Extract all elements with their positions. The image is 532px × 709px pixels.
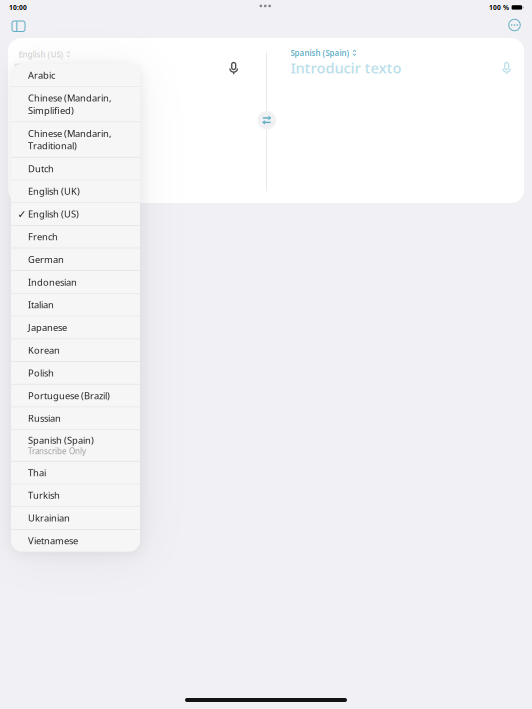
button[interactable]: Dutch [11, 157, 140, 180]
staticText: Dutch [28, 162, 54, 175]
button[interactable]: Italian [11, 294, 140, 316]
button[interactable]: More Options [508, 18, 521, 31]
button[interactable]: Korean [11, 339, 140, 361]
button[interactable]: English (US) [18, 49, 70, 60]
staticText: Russian [28, 412, 61, 424]
button[interactable]: Record Spanish [502, 62, 511, 75]
staticText: Simplified) [28, 104, 74, 116]
button[interactable]: Thai [11, 461, 140, 484]
button[interactable]: Indonesian [11, 271, 140, 293]
button[interactable]: Chinese (Mandarin, [11, 122, 140, 157]
staticText: French [28, 230, 58, 243]
staticText: Chinese (Mandarin, [28, 127, 112, 139]
staticText: Enter text [13, 58, 83, 77]
staticText: Japanese [28, 321, 67, 334]
staticText: Transcribe Only [28, 446, 86, 456]
button[interactable]: Polish [11, 362, 140, 384]
staticText: English (UK) [28, 185, 80, 197]
staticText: Chinese (Mandarin, [28, 92, 112, 104]
staticText: Arabic [28, 69, 55, 81]
button[interactable]: Toggle Sidebar [12, 21, 25, 31]
staticText: Indonesian [28, 276, 77, 288]
button[interactable]: Record English [229, 62, 238, 75]
staticText: Portuguese (Brazil) [28, 389, 110, 402]
staticText: Korean [28, 344, 60, 356]
button[interactable]: Chinese (Mandarin, [11, 87, 140, 121]
staticText: Spanish (Spain) [28, 434, 94, 446]
staticText: Thai [28, 466, 46, 479]
staticText: 10:00 [9, 3, 27, 12]
button[interactable]: French [11, 226, 140, 248]
staticText: English (US) [18, 49, 63, 60]
staticText: Ukrainian [28, 512, 70, 524]
button[interactable]: Arabic [11, 64, 140, 86]
staticText: Traditional) [28, 139, 77, 152]
staticText: German [28, 253, 64, 266]
staticText: Polish [28, 367, 54, 379]
button[interactable]: English (UK) [11, 180, 140, 202]
button[interactable]: Turkish [11, 484, 140, 506]
staticText: Turkish [28, 489, 60, 501]
staticText: Vietnamese [28, 534, 78, 547]
button[interactable]: German [11, 248, 140, 270]
staticText: 100 % [489, 3, 509, 12]
staticText: Italian [28, 299, 54, 311]
button[interactable]: ✓ [11, 203, 140, 225]
button[interactable]: Spanish (Spain) [290, 47, 356, 58]
button[interactable]: Ukrainian [11, 507, 140, 529]
staticText: Spanish (Spain) [290, 47, 349, 58]
button[interactable]: Japanese [11, 316, 140, 338]
staticText: English (US) [28, 208, 79, 220]
button[interactable]: Portuguese (Brazil) [11, 384, 140, 407]
button[interactable]: Russian [11, 407, 140, 429]
button[interactable]: Spanish (Spain) [11, 430, 140, 461]
button[interactable]: Swap Languages [257, 111, 276, 129]
button[interactable]: Vietnamese [11, 530, 140, 552]
staticText: Introducir texto [290, 58, 401, 78]
staticText: ✓ [17, 208, 26, 220]
